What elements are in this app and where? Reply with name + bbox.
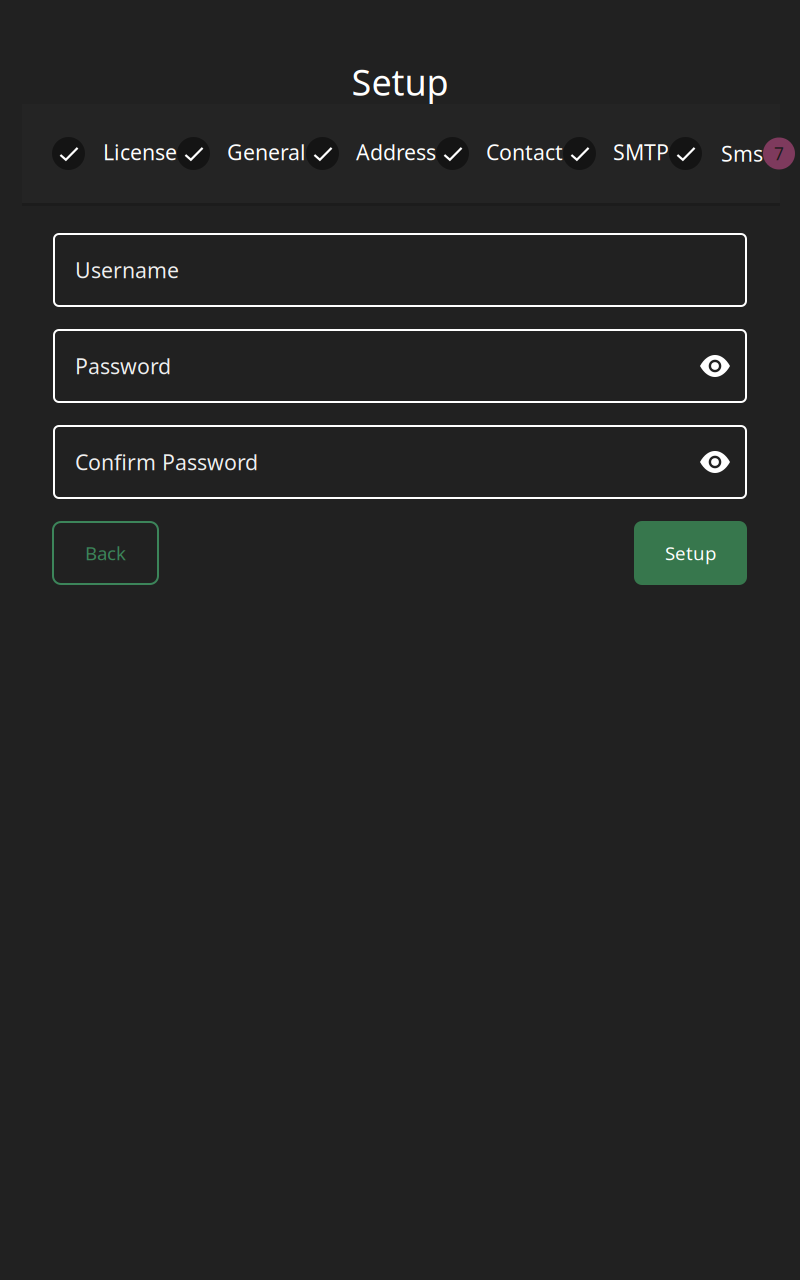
staticText: Sms <box>721 139 763 168</box>
staticText: Username <box>75 256 179 284</box>
button[interactable]: Show Password <box>692 343 738 389</box>
staticText: Address <box>356 138 436 166</box>
button[interactable]: Sms <box>669 104 795 203</box>
button[interactable]: Setup <box>634 521 747 585</box>
staticText: Contact <box>486 138 563 166</box>
staticText: SMTP <box>613 138 669 166</box>
staticText: General <box>227 138 306 166</box>
button[interactable]: Confirm Password <box>54 426 746 498</box>
button[interactable]: Password <box>54 330 746 402</box>
staticText: License <box>103 138 177 166</box>
staticText: Back <box>85 541 126 565</box>
staticText: Setup <box>351 58 448 106</box>
staticText: Password <box>75 352 171 380</box>
button[interactable]: Contact <box>436 104 563 203</box>
staticText: Setup <box>665 541 716 565</box>
staticText: 7 <box>774 142 784 165</box>
button[interactable]: Username <box>54 234 746 306</box>
button[interactable]: Back <box>53 522 158 584</box>
staticText: Confirm Password <box>75 448 258 476</box>
button[interactable]: SMTP <box>563 104 669 203</box>
button[interactable]: General <box>177 104 306 203</box>
button[interactable]: Show Confirm Password <box>692 439 738 485</box>
button[interactable]: License <box>52 104 177 203</box>
button[interactable]: Address <box>306 104 436 203</box>
